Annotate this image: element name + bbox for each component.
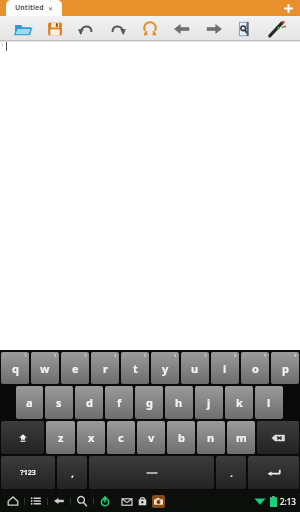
- staticText: u: [191, 361, 199, 376]
- staticText: 1: [1, 42, 4, 49]
- staticText: f: [117, 395, 122, 410]
- staticText: l: [267, 395, 271, 410]
- staticText: s: [56, 395, 62, 410]
- button[interactable]: Open: [10, 16, 36, 41]
- button[interactable]: ,: [57, 456, 87, 489]
- staticText: r: [103, 361, 108, 376]
- button[interactable]: h: [165, 386, 193, 419]
- staticText: ,: [71, 467, 74, 479]
- button[interactable]: Recent apps: [27, 492, 45, 510]
- staticText: i: [223, 361, 227, 376]
- button[interactable]: Back: [169, 16, 195, 41]
- button[interactable]: x: [77, 421, 105, 454]
- button[interactable]: Shift: [1, 421, 44, 454]
- staticText: 3: [84, 353, 87, 358]
- button[interactable]: Undo: [73, 16, 99, 41]
- staticText: v: [148, 430, 155, 445]
- button[interactable]: w: [31, 352, 59, 384]
- staticText: w: [40, 361, 50, 376]
- staticText: m: [236, 430, 247, 445]
- staticText: 4: [114, 353, 117, 358]
- button[interactable]: o: [241, 352, 269, 384]
- staticText: d: [86, 395, 93, 410]
- button[interactable]: .: [216, 456, 246, 489]
- button[interactable]: Redo: [105, 16, 131, 41]
- button[interactable]: c: [107, 421, 135, 454]
- button[interactable]: r: [91, 352, 119, 384]
- button[interactable]: t: [121, 352, 149, 384]
- staticText: 2:13: [280, 496, 296, 507]
- button[interactable]: Notifications: [96, 492, 114, 510]
- button[interactable]: ?123: [1, 456, 55, 489]
- button[interactable]: Forward: [201, 16, 227, 41]
- button[interactable]: z: [46, 421, 75, 454]
- button[interactable]: a: [16, 386, 43, 419]
- button[interactable]: d: [75, 386, 103, 419]
- button[interactable]: g: [135, 386, 163, 419]
- staticText: ?123: [20, 468, 36, 478]
- staticText: q: [12, 361, 19, 376]
- staticText: 2: [54, 353, 57, 358]
- staticText: x: [88, 430, 95, 445]
- button[interactable]: Symbols: [137, 16, 163, 41]
- staticText: 6: [174, 353, 177, 358]
- staticText: j: [207, 395, 211, 410]
- button[interactable]: Save: [42, 16, 68, 41]
- button[interactable]: e: [61, 352, 89, 384]
- button[interactable]: Search: [73, 492, 91, 510]
- staticText: .: [230, 467, 233, 479]
- button[interactable]: i: [211, 352, 239, 384]
- button[interactable]: b: [167, 421, 195, 454]
- staticText: p: [282, 361, 289, 376]
- button[interactable]: y: [151, 352, 179, 384]
- staticText: 0: [294, 353, 297, 358]
- staticText: 7: [204, 353, 207, 358]
- button[interactable]: j: [195, 386, 223, 419]
- button[interactable]: p: [271, 352, 299, 384]
- button[interactable]: Untitled: [6, 0, 62, 16]
- staticText: 9: [264, 353, 267, 358]
- staticText: c: [118, 430, 124, 445]
- staticText: b: [178, 430, 185, 445]
- button[interactable]: Format: [264, 16, 290, 41]
- staticText: Untitled: [15, 3, 44, 13]
- staticText: o: [252, 361, 259, 376]
- staticText: z: [58, 430, 64, 445]
- staticText: e: [72, 361, 79, 376]
- button[interactable]: q: [1, 352, 29, 384]
- button[interactable]: Home: [4, 492, 22, 510]
- staticText: 5: [144, 353, 147, 358]
- staticText: k: [236, 395, 243, 410]
- staticText: n: [207, 430, 215, 445]
- staticText: 1: [24, 353, 27, 358]
- button[interactable]: v: [137, 421, 165, 454]
- button[interactable]: Space: [89, 456, 214, 489]
- button[interactable]: Enter: [248, 456, 299, 489]
- button[interactable]: m: [227, 421, 255, 454]
- staticText: h: [175, 395, 183, 410]
- button[interactable]: s: [45, 386, 73, 419]
- button[interactable]: u: [181, 352, 209, 384]
- button[interactable]: New tab: [281, 1, 295, 15]
- button[interactable]: Back: [50, 492, 68, 510]
- button[interactable]: Search in page: [232, 16, 258, 41]
- staticText: t: [133, 361, 138, 376]
- button[interactable]: k: [225, 386, 253, 419]
- staticText: y: [162, 361, 169, 376]
- staticText: 8: [234, 353, 237, 358]
- button[interactable]: n: [197, 421, 225, 454]
- button[interactable]: f: [105, 386, 133, 419]
- staticText: g: [146, 395, 153, 410]
- button[interactable]: Delete: [257, 421, 299, 454]
- button[interactable]: l: [255, 386, 283, 419]
- staticText: a: [26, 395, 33, 410]
- staticText: ✕: [48, 5, 54, 12]
